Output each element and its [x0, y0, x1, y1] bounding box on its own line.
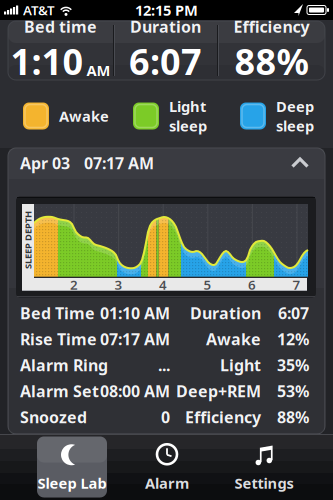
- staticText: 12%: [277, 328, 309, 350]
- staticText: 35%: [277, 354, 309, 376]
- staticText: sleep: [169, 116, 207, 135]
- staticText: Awake: [206, 328, 261, 350]
- staticText: 07:17 AM: [100, 328, 170, 350]
- button[interactable]: Sleep Lab: [37, 436, 107, 497]
- staticText: sleep: [276, 116, 314, 135]
- staticText: 6: [248, 276, 256, 293]
- staticText: Settings: [234, 473, 293, 493]
- staticText: 6:07: [129, 37, 202, 85]
- button[interactable]: Settings: [219, 436, 309, 497]
- staticText: 88%: [277, 406, 309, 428]
- staticText: Alarm Ring: [20, 354, 108, 376]
- staticText: Apr 03: [20, 152, 70, 174]
- staticText: 08:00 AM: [100, 380, 170, 402]
- staticText: Alarm Set: [20, 380, 99, 402]
- staticText: AT&T: [23, 1, 55, 19]
- staticText: 0: [161, 406, 170, 428]
- staticText: 4: [159, 276, 167, 293]
- staticText: 07:17 AM: [84, 152, 154, 174]
- button[interactable]: Alarm: [122, 436, 212, 497]
- staticText: 53%: [277, 380, 309, 402]
- staticText: 6:07: [278, 302, 309, 324]
- staticText: ...: [158, 354, 170, 376]
- staticText: 01:10 AM: [100, 302, 170, 324]
- staticText: 88%: [234, 37, 308, 85]
- staticText: AM: [86, 60, 110, 80]
- button[interactable]: Collapse day summary: [8, 148, 325, 178]
- staticText: Duration: [190, 302, 261, 324]
- staticText: Bed Time: [20, 302, 95, 324]
- staticText: 7: [292, 276, 300, 293]
- staticText: Alarm: [145, 473, 189, 493]
- staticText: Sleep Lab: [37, 473, 106, 493]
- staticText: Bed time: [24, 16, 97, 37]
- staticText: 3: [114, 276, 122, 293]
- staticText: Rise Time: [20, 328, 97, 350]
- staticText: 1:10: [10, 37, 83, 85]
- staticText: 12:15 PM: [135, 0, 198, 20]
- staticText: 5: [203, 276, 211, 293]
- staticText: Snoozed: [20, 406, 87, 428]
- staticText: Light: [169, 96, 206, 116]
- staticText: Awake: [59, 106, 109, 126]
- staticText: Efficiency: [233, 16, 309, 37]
- staticText: Deep+REM: [176, 380, 261, 402]
- staticText: 2: [70, 276, 78, 293]
- staticText: Efficiency: [185, 406, 261, 428]
- staticText: Duration: [130, 16, 201, 37]
- staticText: SLEEP DEPTH: [0, 234, 57, 246]
- staticText: Light: [220, 354, 261, 376]
- staticText: Deep: [276, 96, 314, 116]
